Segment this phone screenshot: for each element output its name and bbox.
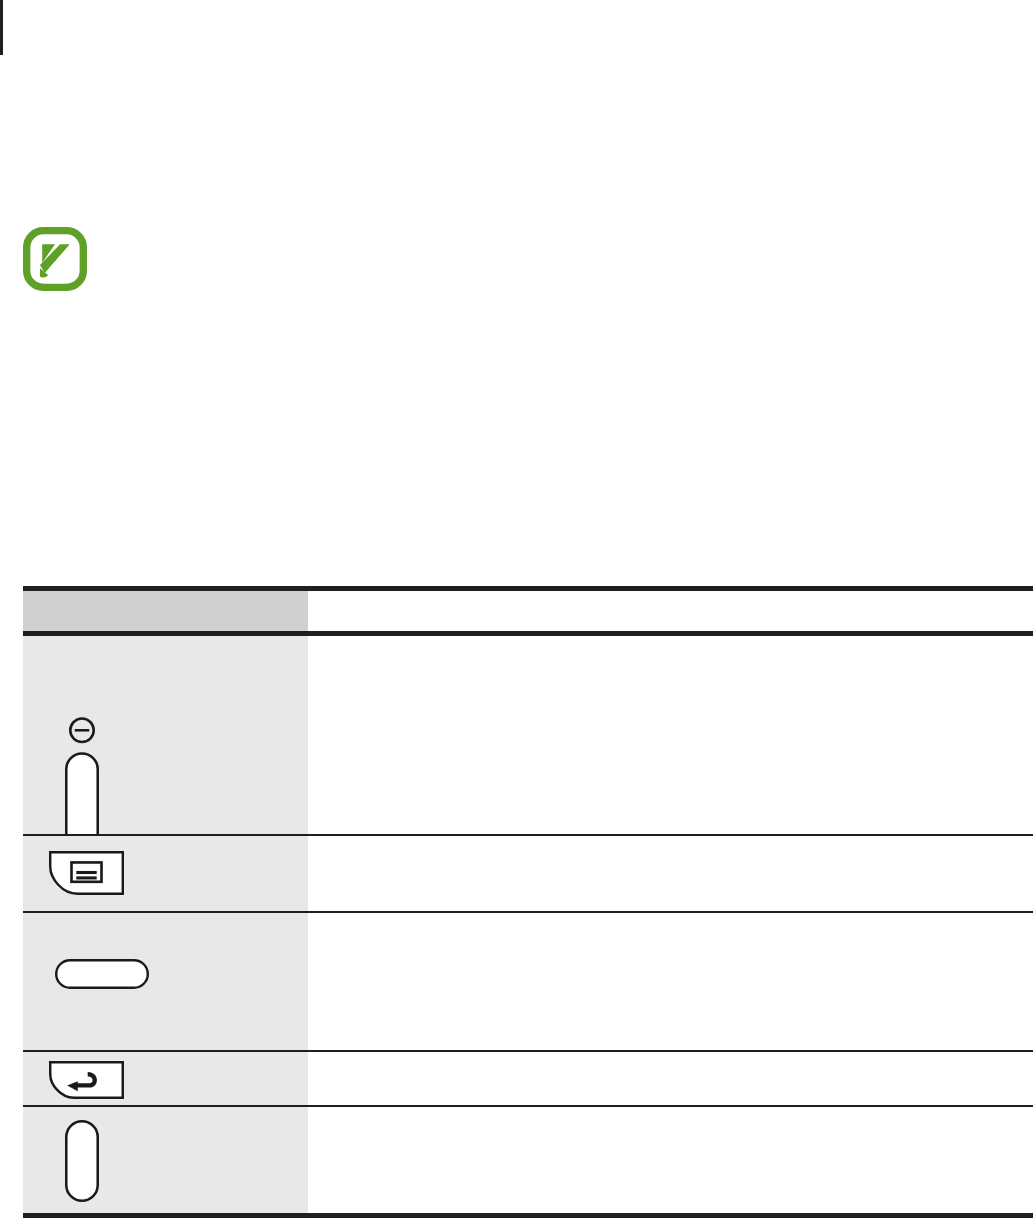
button[interactable]: Home key [23,913,1033,1050]
other: Back key [49,1061,124,1099]
button[interactable] [23,591,1033,631]
other: Recents key [49,851,124,895]
button[interactable]: Volume key [23,636,1033,834]
other: Note [23,227,87,291]
button[interactable]: Back key [23,1052,1033,1105]
other: Volume key [65,716,99,850]
button[interactable]: Power key [23,1107,1033,1213]
button[interactable]: Recents key [23,836,1033,911]
other: Power key [65,1120,99,1202]
other: Home key [55,959,149,989]
